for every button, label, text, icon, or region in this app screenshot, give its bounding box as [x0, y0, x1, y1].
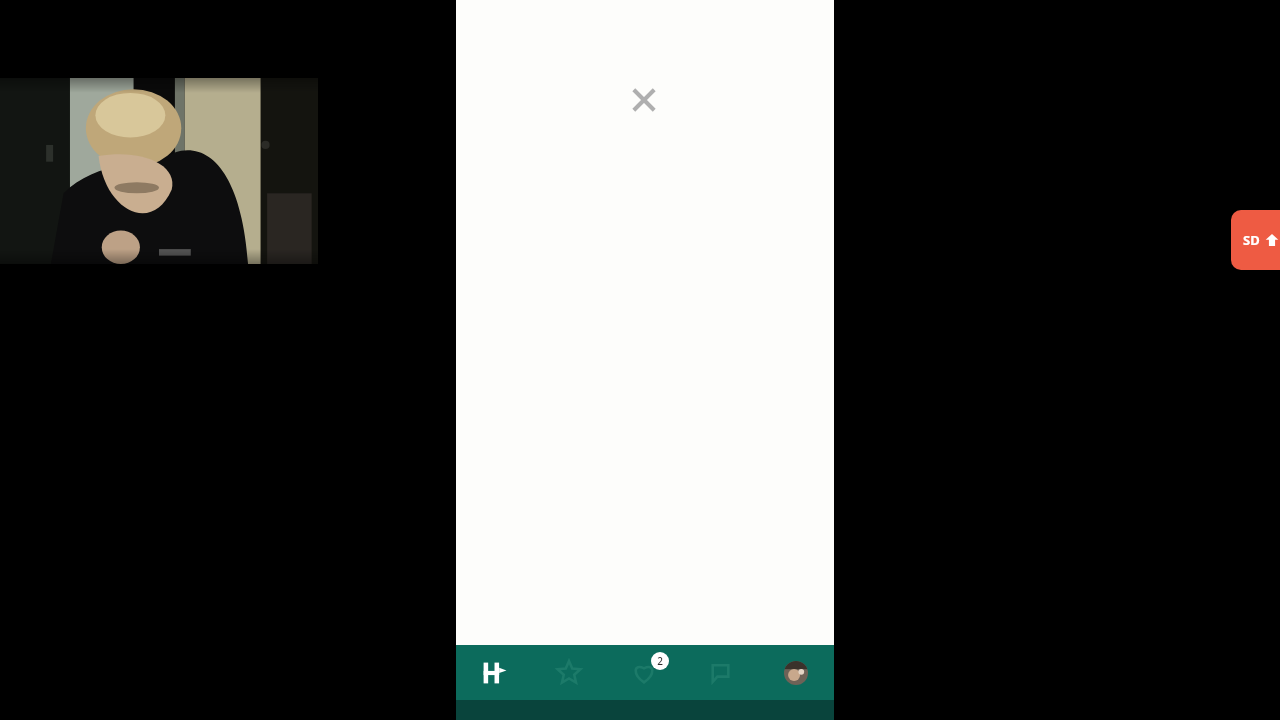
button[interactable]: Profile [758, 645, 834, 700]
button[interactable]: Home [456, 645, 531, 700]
staticText: SD [1243, 231, 1260, 249]
button[interactable]: Activity [606, 645, 682, 700]
button[interactable]: SD quality upgrade [1231, 210, 1280, 270]
button[interactable]: Close [622, 78, 666, 122]
staticText: 2 [657, 654, 663, 668]
button[interactable]: Favorites [531, 645, 606, 700]
